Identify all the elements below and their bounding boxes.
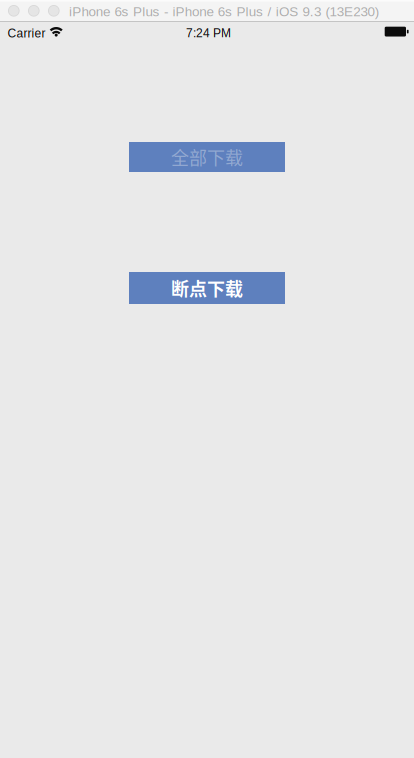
button[interactable]: Zoom (48, 5, 60, 17)
button[interactable]: 断点下载 (129, 272, 285, 304)
staticText: 全部下载 (171, 144, 243, 170)
staticText: 断点下载 (171, 275, 243, 301)
button[interactable]: Close (8, 5, 20, 17)
staticText: 7:24 PM (186, 26, 231, 40)
button[interactable]: 全部下载 (129, 142, 285, 172)
staticText: Carrier (7, 27, 45, 40)
button[interactable]: Minimize (28, 5, 40, 17)
staticText: iPhone 6s Plus - iPhone 6s Plus / iOS 9.… (69, 4, 379, 19)
